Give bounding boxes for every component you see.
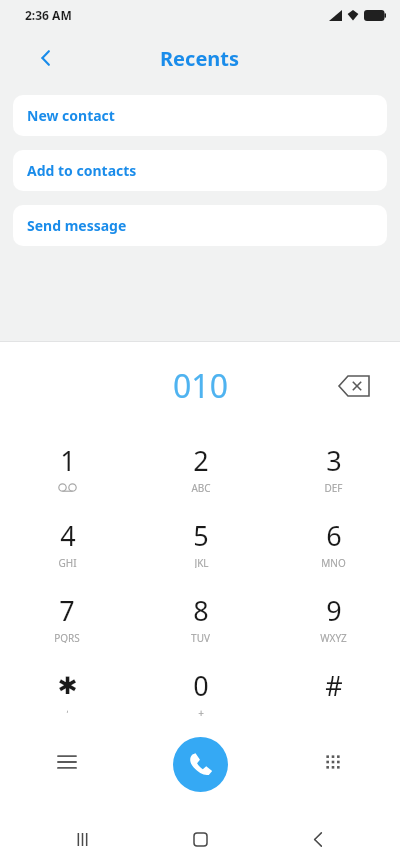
- staticText: 010: [173, 364, 228, 408]
- button[interactable]: 4: [0, 505, 134, 580]
- staticText: JKL: [194, 556, 209, 568]
- button[interactable]: Back: [24, 36, 68, 80]
- button[interactable]: 8: [134, 580, 267, 655]
- staticText: 5: [193, 517, 209, 554]
- button[interactable]: Keypad: [309, 738, 357, 786]
- staticText: Add to contacts: [27, 161, 137, 180]
- staticText: TUV: [191, 631, 210, 643]
- staticText: ✱: [57, 672, 78, 700]
- button[interactable]: Backspace: [332, 364, 376, 408]
- staticText: Recents: [160, 45, 240, 72]
- staticText: 4: [60, 517, 76, 554]
- staticText: 6: [326, 517, 342, 554]
- button[interactable]: 3: [267, 430, 400, 505]
- button[interactable]: 7: [0, 580, 134, 655]
- button[interactable]: 2: [134, 430, 267, 505]
- button[interactable]: 0: [134, 655, 267, 730]
- staticText: PQRS: [54, 631, 80, 643]
- button[interactable]: Send message: [13, 205, 387, 246]
- staticText: 9: [326, 592, 342, 629]
- staticText: #: [325, 667, 343, 704]
- staticText: 2:36 AM: [25, 7, 72, 23]
- button[interactable]: New contact: [13, 95, 387, 136]
- staticText: 8: [193, 592, 209, 629]
- staticText: ,: [66, 703, 69, 714]
- button[interactable]: Back: [296, 817, 340, 861]
- staticText: +: [198, 706, 204, 718]
- staticText: 7: [59, 592, 75, 629]
- staticText: 2: [193, 442, 209, 479]
- button[interactable]: Home: [178, 817, 222, 861]
- staticText: 0: [193, 667, 209, 704]
- button[interactable]: ✱: [0, 655, 134, 730]
- button[interactable]: #: [267, 655, 400, 730]
- button[interactable]: Recent apps: [60, 817, 104, 861]
- staticText: 1: [60, 442, 76, 479]
- staticText: GHI: [58, 556, 77, 568]
- staticText: DEF: [324, 481, 343, 493]
- button[interactable]: 1: [0, 430, 134, 505]
- button[interactable]: Call: [173, 737, 228, 792]
- button[interactable]: Add to contacts: [13, 150, 387, 191]
- staticText: ABC: [191, 481, 211, 493]
- staticText: Send message: [27, 216, 127, 235]
- button[interactable]: 9: [267, 580, 400, 655]
- staticText: 3: [326, 442, 342, 479]
- staticText: WXYZ: [320, 631, 347, 643]
- staticText: MNO: [321, 556, 346, 568]
- button[interactable]: 6: [267, 505, 400, 580]
- button[interactable]: 5: [134, 505, 267, 580]
- staticText: New contact: [27, 106, 115, 125]
- button[interactable]: Menu: [43, 738, 91, 786]
